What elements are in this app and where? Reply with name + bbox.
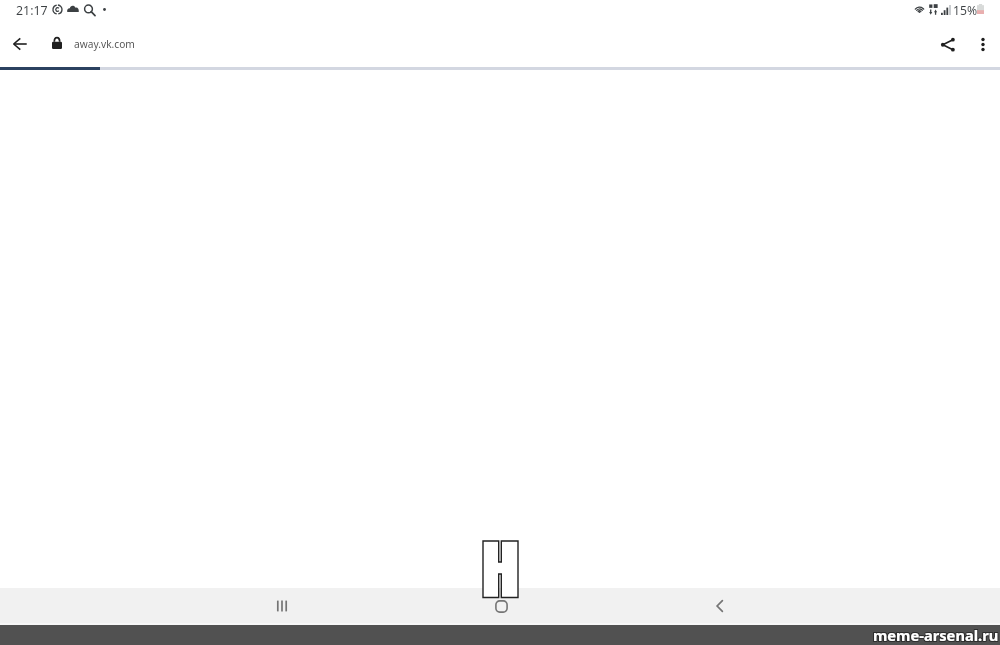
button[interactable]: Home	[477, 588, 525, 624]
staticText: 21:17	[16, 2, 48, 19]
button[interactable]: Share	[928, 22, 968, 66]
staticText: meme-arsenal.ru	[873, 625, 999, 645]
staticText: meme-arsenal.ru	[874, 626, 1000, 645]
staticText: meme-arsenal.ru	[872, 625, 998, 645]
staticText: 15%	[953, 2, 978, 19]
staticText: away.vk.com	[74, 37, 135, 51]
staticText: meme-arsenal.ru	[874, 624, 1000, 644]
button[interactable]: More options	[963, 22, 1000, 66]
staticText: meme-arsenal.ru	[872, 624, 998, 644]
staticText: meme-arsenal.ru	[874, 625, 1000, 645]
staticText: meme-arsenal.ru	[873, 624, 999, 644]
button[interactable]: Back	[0, 22, 40, 66]
staticText: meme-arsenal.ru	[873, 626, 999, 645]
button[interactable]: away.vk.com	[42, 22, 222, 66]
button[interactable]: Back	[696, 588, 744, 624]
button[interactable]: Recent apps	[258, 588, 306, 624]
staticText: meme-arsenal.ru	[872, 626, 998, 645]
